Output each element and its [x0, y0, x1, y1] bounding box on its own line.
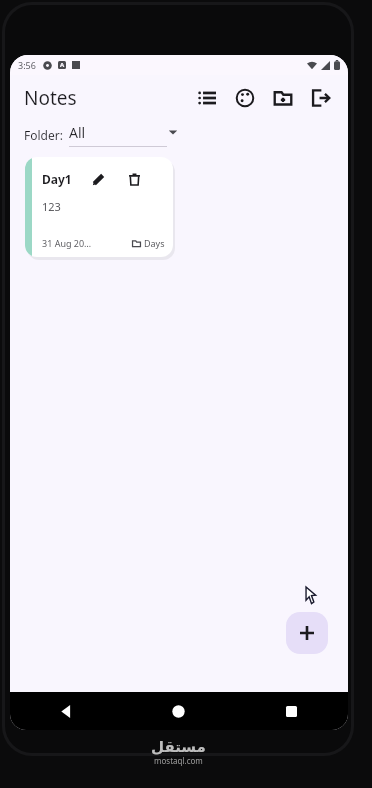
- staticText: All: [69, 123, 86, 142]
- button[interactable]: Back: [10, 692, 122, 730]
- staticText: mostaql.com: [154, 755, 203, 766]
- button[interactable]: Theme: [226, 79, 264, 117]
- button[interactable]: Edit: [88, 169, 108, 189]
- button[interactable]: Day1: [25, 157, 173, 257]
- button[interactable]: Delete: [124, 169, 144, 189]
- button[interactable]: Recents: [235, 692, 348, 730]
- staticText: 31 Aug 20…: [42, 237, 92, 249]
- button[interactable]: Add note: [286, 612, 328, 654]
- staticText: Notes: [24, 85, 77, 111]
- button[interactable]: Home: [122, 692, 235, 730]
- staticText: Days: [144, 237, 165, 249]
- button[interactable]: New folder: [264, 79, 302, 117]
- staticText: مستقل: [151, 738, 206, 755]
- staticText: A: [60, 61, 65, 69]
- staticText: 3:56: [18, 59, 36, 71]
- staticText: 123: [42, 199, 61, 214]
- staticText: Folder:: [24, 127, 63, 143]
- button[interactable]: Logout: [302, 79, 340, 117]
- button[interactable]: List view: [188, 79, 226, 117]
- staticText: Day1: [42, 171, 72, 187]
- button[interactable]: All: [69, 123, 179, 147]
